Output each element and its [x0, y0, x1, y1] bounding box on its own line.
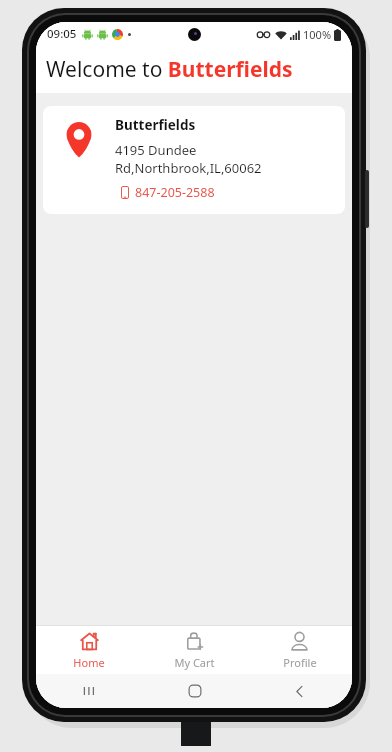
- staticText: Butterfields: [115, 116, 196, 134]
- staticText: Profile: [283, 655, 317, 670]
- button[interactable]: Location: [43, 106, 345, 214]
- button[interactable]: My Cart: [142, 626, 247, 674]
- staticText: 09:05: [47, 26, 77, 42]
- button[interactable]: Recent apps: [36, 674, 142, 708]
- staticText: 847-205-2588: [135, 184, 215, 201]
- other: My Cart: [184, 631, 205, 652]
- other: Call: [121, 186, 129, 199]
- staticText: 100%: [303, 27, 332, 42]
- button[interactable]: Home: [142, 674, 247, 708]
- button[interactable]: Profile: [247, 626, 352, 674]
- staticText: Welcome to Butterfields: [46, 55, 293, 84]
- staticText: My Cart: [174, 655, 215, 670]
- staticText: 4195 Dundee Rd,Northbrook,IL,60062: [115, 141, 337, 177]
- button[interactable]: Call: [115, 183, 219, 202]
- other: Location: [61, 122, 97, 158]
- staticText: Home: [73, 655, 105, 670]
- button[interactable]: Home: [36, 626, 142, 674]
- other: Profile: [289, 631, 310, 652]
- other: Home: [79, 631, 100, 652]
- button[interactable]: Back: [247, 674, 352, 708]
